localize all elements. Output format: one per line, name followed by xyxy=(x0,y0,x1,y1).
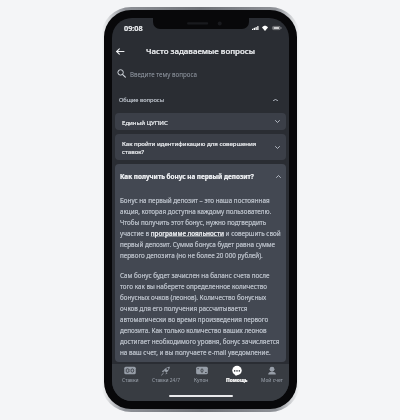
button[interactable]: Как пройти идентификацию для совершения … xyxy=(115,134,286,160)
staticText: Мой счет xyxy=(261,377,283,384)
staticText: Сам бонус будет зачислен на баланс счета… xyxy=(120,271,282,356)
button[interactable]: Ставки 24/7 xyxy=(148,364,184,388)
staticText: Ставки xyxy=(122,377,139,384)
staticText: Общие вопросы xyxy=(119,96,164,104)
staticText: Как получить бонус на первый депозит? xyxy=(120,172,272,181)
staticText: Бонус на первый депозит – это наша посто… xyxy=(120,196,282,259)
button[interactable]: Помощь xyxy=(219,364,254,388)
button[interactable]: Назад xyxy=(112,42,129,61)
button[interactable]: Введите тему вопроса xyxy=(112,63,289,84)
staticText: Единый ЦУПИС xyxy=(122,118,271,126)
button[interactable]: Как получить бонус на первый депозит? xyxy=(115,164,286,196)
button[interactable]: Общие вопросы xyxy=(112,90,289,109)
button[interactable]: Ставки xyxy=(112,364,148,388)
staticText: Введите тему вопроса xyxy=(130,70,197,78)
button[interactable]: Купон xyxy=(184,364,219,388)
button[interactable]: Мой счет xyxy=(254,364,289,388)
staticText: Как пройти идентификацию для совершения … xyxy=(122,139,271,156)
staticText: Часто задаваемые вопросы xyxy=(146,46,256,57)
staticText: Купон xyxy=(194,377,209,384)
staticText: Помощь xyxy=(226,377,248,384)
staticText: 09:08 xyxy=(124,23,143,33)
button[interactable]: Единый ЦУПИС xyxy=(115,113,286,130)
staticText: Ставки 24/7 xyxy=(152,377,180,384)
